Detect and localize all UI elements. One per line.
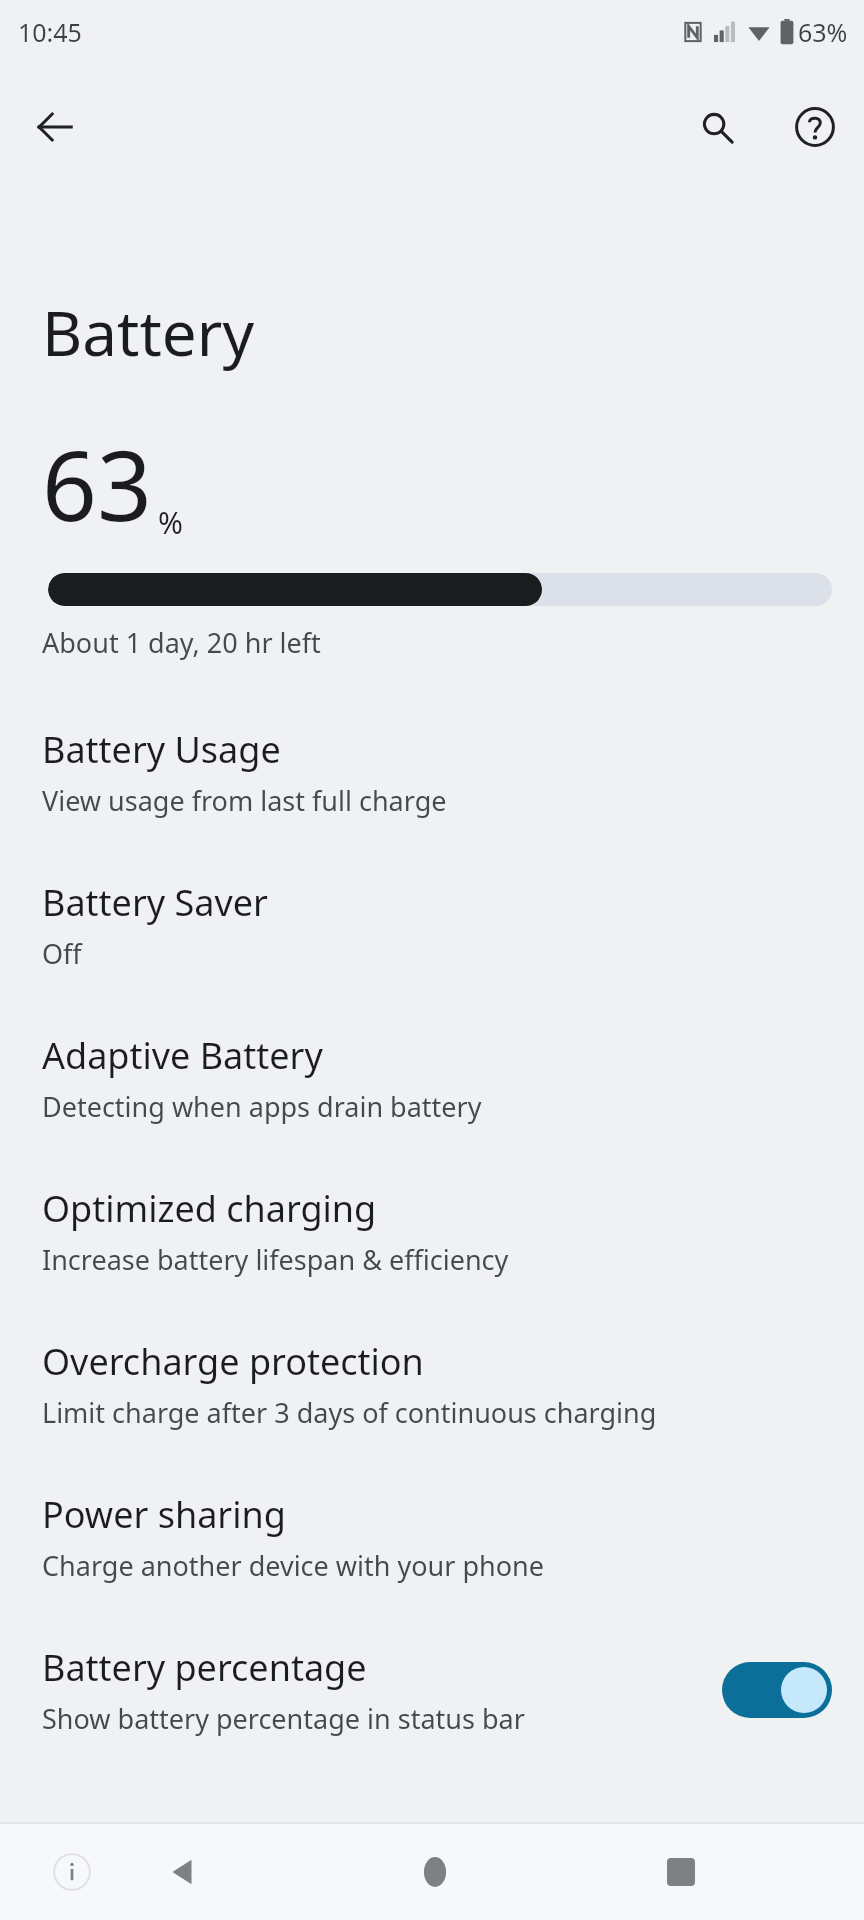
staticText: View usage from last full charge: [42, 782, 447, 819]
staticText: Increase battery lifespan & efficiency: [42, 1241, 509, 1278]
staticText: Detecting when apps drain battery: [42, 1088, 482, 1125]
button[interactable]: Adaptive Battery: [0, 1001, 864, 1154]
button[interactable]: Search: [684, 94, 750, 160]
staticText: About 1 day, 20 hr left: [42, 624, 321, 661]
staticText: Limit charge after 3 days of continuous …: [42, 1394, 657, 1431]
button[interactable]: Battery Saver: [0, 848, 864, 1001]
staticText: 10:45: [18, 15, 82, 49]
button[interactable]: Info: [44, 1844, 100, 1900]
button[interactable]: Power sharing: [0, 1460, 864, 1613]
staticText: Overcharge protection: [42, 1337, 424, 1386]
staticText: %: [158, 502, 183, 543]
button[interactable]: Home: [407, 1844, 463, 1900]
button[interactable]: Optimized charging: [0, 1154, 864, 1307]
staticText: Battery: [42, 290, 255, 374]
staticText: 63%: [798, 15, 848, 49]
button[interactable]: Back: [22, 94, 88, 160]
staticText: Power sharing: [42, 1490, 286, 1539]
staticText: Battery Usage: [42, 725, 281, 774]
staticText: Show battery percentage in status bar: [42, 1700, 525, 1737]
staticText: Optimized charging: [42, 1184, 377, 1233]
staticText: Off: [42, 935, 82, 972]
button[interactable]: Battery Usage: [0, 695, 864, 848]
button[interactable]: Overcharge protection: [0, 1307, 864, 1460]
staticText: Battery Saver: [42, 878, 268, 927]
staticText: Battery percentage: [42, 1643, 367, 1692]
staticText: 63: [42, 418, 152, 549]
staticText: Charge another device with your phone: [42, 1547, 544, 1584]
button[interactable]: Battery percentage toggle: [722, 1662, 832, 1718]
button[interactable]: Battery percentage: [0, 1613, 864, 1766]
button[interactable]: Recent apps: [653, 1844, 709, 1900]
button[interactable]: Help: [782, 94, 848, 160]
staticText: Adaptive Battery: [42, 1031, 323, 1080]
button[interactable]: Back: [154, 1844, 210, 1900]
